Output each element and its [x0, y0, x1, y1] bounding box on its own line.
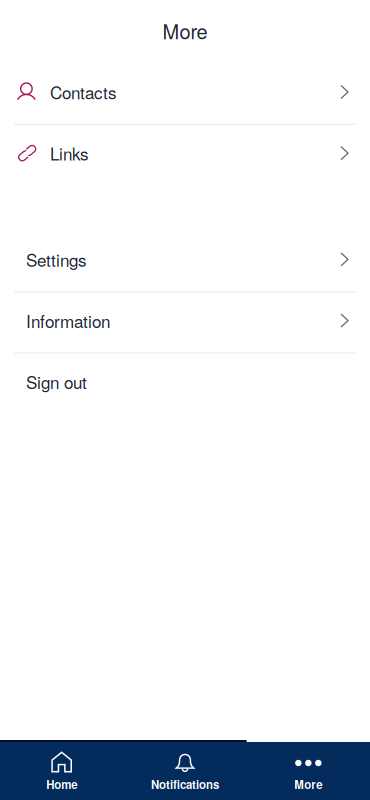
staticText: Notifications [151, 776, 219, 792]
staticText: Information [26, 308, 110, 333]
staticText: Home [46, 776, 77, 792]
staticText: Contacts [50, 80, 117, 104]
button[interactable]: More [247, 740, 370, 800]
staticText: Settings [26, 247, 87, 271]
button[interactable]: Settings [0, 231, 370, 291]
button[interactable]: Notifications [123, 740, 247, 800]
staticText: Sign out [26, 369, 87, 394]
staticText: More [294, 776, 322, 792]
button[interactable]: Home [0, 740, 123, 800]
button[interactable]: Links [0, 125, 370, 185]
button[interactable]: Sign out [0, 353, 370, 414]
button[interactable]: Information [0, 292, 370, 352]
staticText: Links [50, 141, 89, 165]
button[interactable]: Contacts [0, 64, 370, 124]
staticText: More [162, 16, 207, 45]
